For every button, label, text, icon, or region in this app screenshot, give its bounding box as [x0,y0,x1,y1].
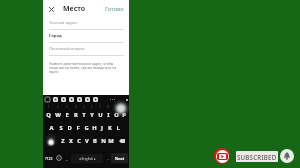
button[interactable]: SUBSCRIBED [236,151,278,162]
button[interactable]: Close [46,4,56,14]
staticText: & [85,120,87,123]
staticText: $ [69,120,71,123]
button[interactable]: $ [65,120,74,133]
staticText: Точный адрес [49,20,78,26]
staticText: W [55,111,61,119]
button[interactable]: - [90,120,98,133]
staticText: , [66,156,68,161]
button[interactable]: Готово [103,3,126,15]
staticText: 7 [99,105,101,109]
staticText: 6 [91,105,93,109]
staticText: L [116,124,120,132]
button[interactable]: Tool 1 [53,97,58,102]
staticText: S [59,124,63,132]
staticText: X [69,137,73,145]
staticText: SUBSCRIBED [237,153,277,161]
button[interactable]: YouTube [214,148,230,164]
button[interactable]: ( [106,120,114,133]
staticText: I [107,111,110,119]
staticText: # [60,120,62,123]
button[interactable]: 5 [80,104,88,120]
button[interactable]: 6 [88,104,96,120]
button[interactable]: Notifications [280,149,294,163]
button[interactable]: 2 [53,104,62,120]
button[interactable]: ) [114,120,122,133]
staticText: 3 [66,105,68,109]
button[interactable]: . [104,148,111,168]
staticText: 1 [48,105,50,109]
staticText: M [108,137,114,145]
button[interactable]: 8 [104,104,112,120]
button[interactable]: Next [111,153,128,163]
staticText: Место [63,4,86,14]
staticText: V [85,137,89,145]
button[interactable]: 1 [44,104,53,120]
button[interactable]: N [99,133,107,148]
button[interactable]: Tool 0 [45,97,50,102]
staticText: Укажите действительный адрес, чтобы люди… [49,61,117,74]
staticText: 0 [123,105,125,109]
button[interactable]: Tool 2 [61,97,66,102]
button[interactable]: X [67,133,75,148]
button[interactable]: + [98,120,106,133]
staticText: U [98,111,103,119]
staticText: E [65,111,69,119]
button[interactable]: # [56,120,65,133]
staticText: R [74,111,78,119]
button[interactable]: Z [58,133,67,148]
staticText: P [122,111,126,119]
button[interactable]: Tool 4 [77,97,82,102]
button[interactable]: 3 [62,104,71,120]
button[interactable]: 4 [71,104,80,120]
button[interactable]: , [63,148,70,168]
staticText: + [101,120,103,123]
button[interactable]: _ [74,120,82,133]
staticText: J [101,124,103,132]
button[interactable]: Точный адрес [49,17,124,30]
staticText: ) [118,120,119,123]
staticText: N [101,137,106,145]
button[interactable]: & [82,120,90,133]
button[interactable]: 9 [112,104,120,120]
staticText: Почтовый индекс [49,46,85,52]
staticText: H [92,124,97,132]
button[interactable]: Город [49,30,124,43]
button[interactable]: M [107,133,115,148]
button[interactable]: Backspace [115,133,128,148]
staticText: @ [50,120,53,123]
button[interactable]: 7 [96,104,104,120]
staticText: G [84,124,89,132]
button[interactable]: Tool 5 [85,97,90,102]
staticText: D [67,124,72,132]
button[interactable]: B [91,133,99,148]
button[interactable]: Emoji [54,148,63,168]
staticText: Next [115,156,125,161]
staticText: ( [110,120,111,123]
button[interactable]: Tool 3 [69,97,74,102]
staticText: 9 [115,105,117,109]
button[interactable]: Tool 6 [93,97,98,102]
button[interactable]: Shift [44,133,58,148]
button[interactable]: ?123 [44,148,54,168]
button[interactable]: More [109,99,116,100]
button[interactable]: Почтовый индекс [49,43,124,56]
staticText: B [93,137,97,145]
button[interactable]: ◂ English ▸ [71,154,103,163]
staticText: Q [46,111,51,119]
staticText: 2 [57,105,59,109]
staticText: . [107,156,109,161]
button[interactable]: C [75,133,83,148]
button[interactable]: @ [47,120,56,133]
staticText: Готово [105,5,124,13]
staticText: ?123 [45,156,53,161]
button[interactable]: V [83,133,91,148]
staticText: 8 [107,105,109,109]
staticText: O [114,111,119,119]
staticText: Z [61,137,65,145]
staticText: A [49,124,54,132]
staticText: C [77,137,81,145]
staticText: K [108,124,112,132]
button[interactable]: 0 [120,104,128,120]
